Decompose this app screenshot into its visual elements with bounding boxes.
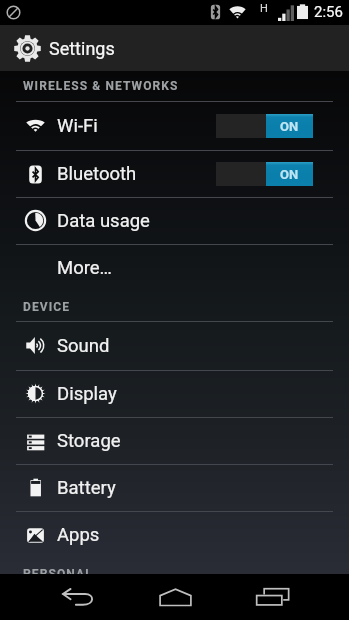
button[interactable]: Wi-Fi bbox=[0, 101, 349, 150]
staticText: Settings bbox=[49, 38, 115, 59]
staticText: Display bbox=[57, 383, 117, 405]
button[interactable]: Back bbox=[45, 574, 111, 620]
staticText: Storage bbox=[57, 430, 121, 452]
staticText: H bbox=[260, 2, 268, 15]
button[interactable]: Storage bbox=[0, 417, 349, 465]
button[interactable]: Sound bbox=[0, 321, 349, 370]
button[interactable]: Display bbox=[0, 370, 349, 417]
staticText: Sound bbox=[57, 335, 110, 357]
staticText: DEVICE bbox=[23, 300, 71, 314]
button[interactable]: Recent apps bbox=[240, 574, 306, 620]
button[interactable]: Settings bbox=[0, 25, 349, 71]
staticText: ON bbox=[280, 167, 299, 182]
button[interactable]: Bluetooth bbox=[0, 150, 349, 198]
staticText: Battery bbox=[57, 477, 116, 499]
staticText: Apps bbox=[57, 524, 100, 546]
staticText: Bluetooth bbox=[57, 163, 137, 185]
staticText: Wi-Fi bbox=[57, 115, 98, 137]
staticText: More… bbox=[57, 257, 112, 279]
button[interactable]: Data usage bbox=[0, 197, 349, 244]
button[interactable]: Home bbox=[142, 574, 208, 620]
button[interactable]: Battery bbox=[0, 464, 349, 511]
staticText: PERSONAL bbox=[23, 567, 93, 581]
staticText: 2:56 bbox=[314, 3, 343, 21]
staticText: WIRELESS & NETWORKS bbox=[23, 79, 179, 93]
staticText: Data usage bbox=[57, 210, 150, 232]
button[interactable]: Apps bbox=[0, 511, 349, 559]
staticText: ON bbox=[280, 119, 299, 134]
button[interactable]: More… bbox=[0, 244, 349, 292]
